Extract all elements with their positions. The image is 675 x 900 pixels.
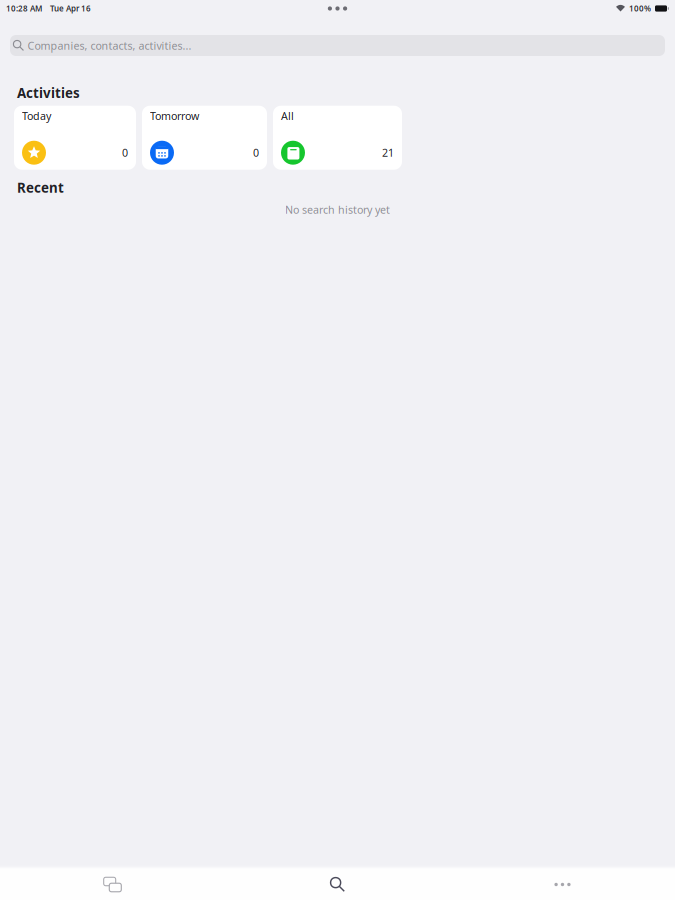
button[interactable]: Search bbox=[225, 869, 450, 900]
button[interactable]: All bbox=[273, 106, 402, 170]
staticText: Tue Apr 16 bbox=[50, 3, 91, 14]
staticText: 100% bbox=[629, 3, 651, 14]
button[interactable]: Tomorrow bbox=[142, 106, 267, 170]
staticText: Today bbox=[22, 109, 51, 123]
staticText: 0 bbox=[122, 146, 128, 160]
staticText: No search history yet bbox=[285, 202, 390, 217]
staticText: Activities bbox=[17, 84, 80, 102]
staticText: All bbox=[281, 109, 294, 123]
staticText: 0 bbox=[253, 146, 259, 160]
staticText: Companies, contacts, activities... bbox=[27, 38, 191, 53]
button[interactable]: Companies bbox=[0, 869, 225, 900]
staticText: 10:28 AM bbox=[6, 3, 42, 14]
staticText: 21 bbox=[382, 146, 394, 160]
staticText: Tomorrow bbox=[150, 109, 199, 123]
staticText: Recent bbox=[17, 179, 64, 196]
button[interactable]: Companies, contacts, activities... bbox=[0, 35, 675, 56]
button[interactable]: More bbox=[450, 869, 675, 900]
button[interactable]: Today bbox=[14, 106, 136, 170]
